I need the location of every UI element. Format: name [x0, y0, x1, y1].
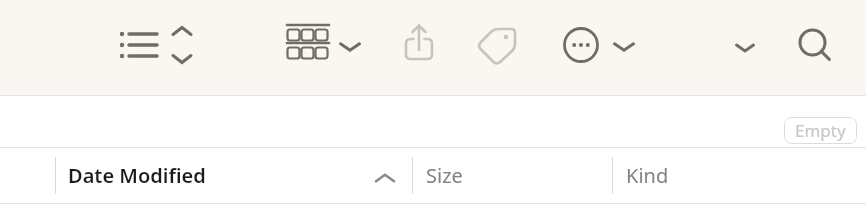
button[interactable]: List view [116, 23, 162, 67]
button[interactable]: Date Modified [56, 148, 412, 203]
staticText: Size [426, 162, 463, 189]
button[interactable]: Sort order [164, 23, 200, 67]
button[interactable]: Kind [613, 148, 866, 203]
button[interactable]: Gallery view [283, 20, 333, 70]
button[interactable]: Show more toolbar items [729, 27, 761, 65]
button[interactable]: View options [334, 26, 366, 64]
button[interactable]: Size [413, 148, 612, 203]
staticText: Kind [626, 162, 669, 189]
button[interactable]: Share [397, 22, 441, 68]
button[interactable]: More actions [557, 21, 605, 69]
button[interactable]: More options [608, 26, 640, 64]
button[interactable]: Tags [474, 22, 520, 68]
staticText: Date Modified [68, 162, 206, 189]
button[interactable]: Search [790, 20, 838, 68]
staticText: Empty [795, 119, 846, 142]
button[interactable]: Empty [784, 117, 857, 144]
